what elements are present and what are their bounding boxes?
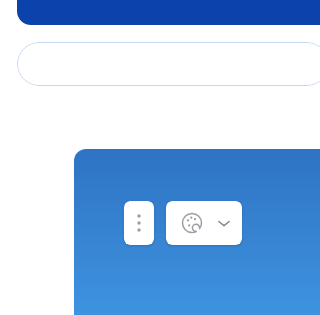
button[interactable]: App bar bbox=[17, 0, 320, 25]
button[interactable]: Search field bbox=[17, 42, 320, 86]
button[interactable]: More options bbox=[124, 201, 154, 245]
button[interactable]: Theme colour palette bbox=[166, 201, 242, 245]
